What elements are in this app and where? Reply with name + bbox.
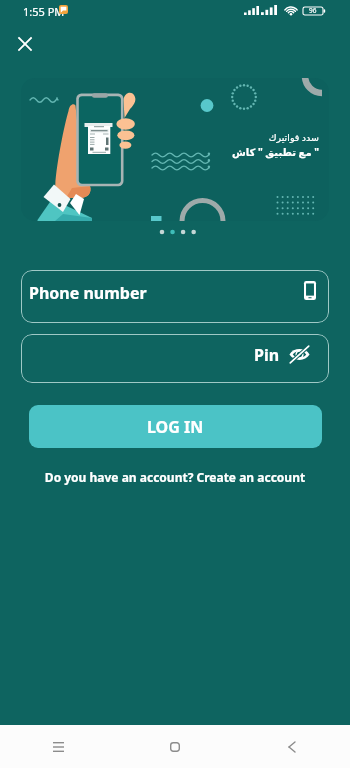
button[interactable]: LOG IN [29,405,322,448]
button[interactable]: Do you have an account? Create an accoun… [0,469,350,485]
staticText: 1:55 PM [23,4,65,19]
staticText: مع تطبيق " كاش " [231,145,319,159]
button[interactable]: Close [7,26,43,62]
button[interactable]: Recents [0,725,116,768]
button[interactable]: Phone number [21,270,329,323]
staticText: Pin [254,344,280,366]
button[interactable]: Pin [21,334,329,383]
staticText: Phone number [29,282,147,304]
button[interactable]: Home [116,725,233,768]
staticText: سدد فواتيرك [268,131,319,144]
staticText: 96 [309,6,317,15]
button[interactable]: Back [233,725,350,768]
staticText: LOG IN [147,416,204,438]
